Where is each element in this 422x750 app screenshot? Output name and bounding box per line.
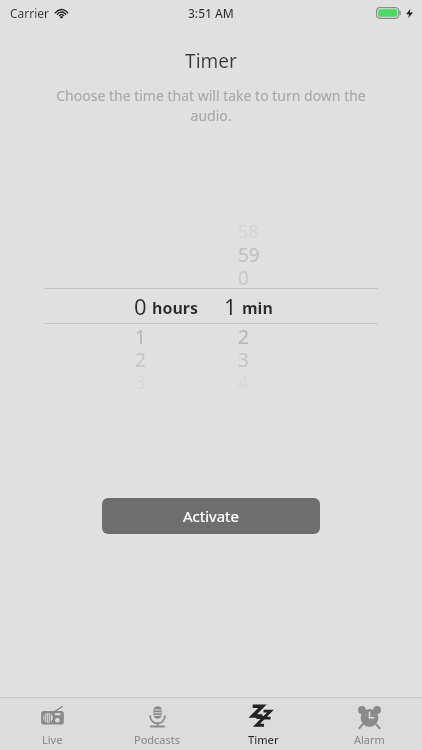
button[interactable]: Live — [0, 698, 105, 750]
button[interactable]: Alarm — [316, 698, 422, 750]
staticText: hours — [152, 297, 198, 319]
button[interactable]: Podcasts — [105, 698, 210, 750]
staticText: 1 — [224, 291, 237, 321]
staticText: 3 — [238, 347, 249, 370]
staticText: 1 — [135, 324, 146, 347]
button[interactable]: Activate — [102, 498, 320, 534]
staticText: Activate — [183, 506, 239, 526]
staticText: 2 — [135, 347, 146, 370]
staticText: 2 — [238, 324, 249, 347]
staticText: min — [242, 297, 273, 319]
staticText: Live — [42, 732, 63, 747]
button[interactable]: 0 — [0, 289, 422, 323]
staticText: 59 — [238, 242, 260, 265]
staticText: Choose the time that will take to turn d… — [56, 86, 366, 125]
staticText: Podcasts — [134, 732, 181, 747]
staticText: 0 — [134, 291, 147, 321]
staticText: Timer — [248, 732, 279, 747]
staticText: Carrier — [10, 5, 50, 21]
staticText: Timer — [0, 48, 422, 74]
staticText: 0 — [238, 265, 249, 288]
button[interactable]: Timer — [210, 698, 316, 750]
staticText: 58 — [238, 219, 259, 242]
staticText: 3:51 AM — [188, 5, 234, 21]
staticText: Alarm — [354, 732, 385, 747]
